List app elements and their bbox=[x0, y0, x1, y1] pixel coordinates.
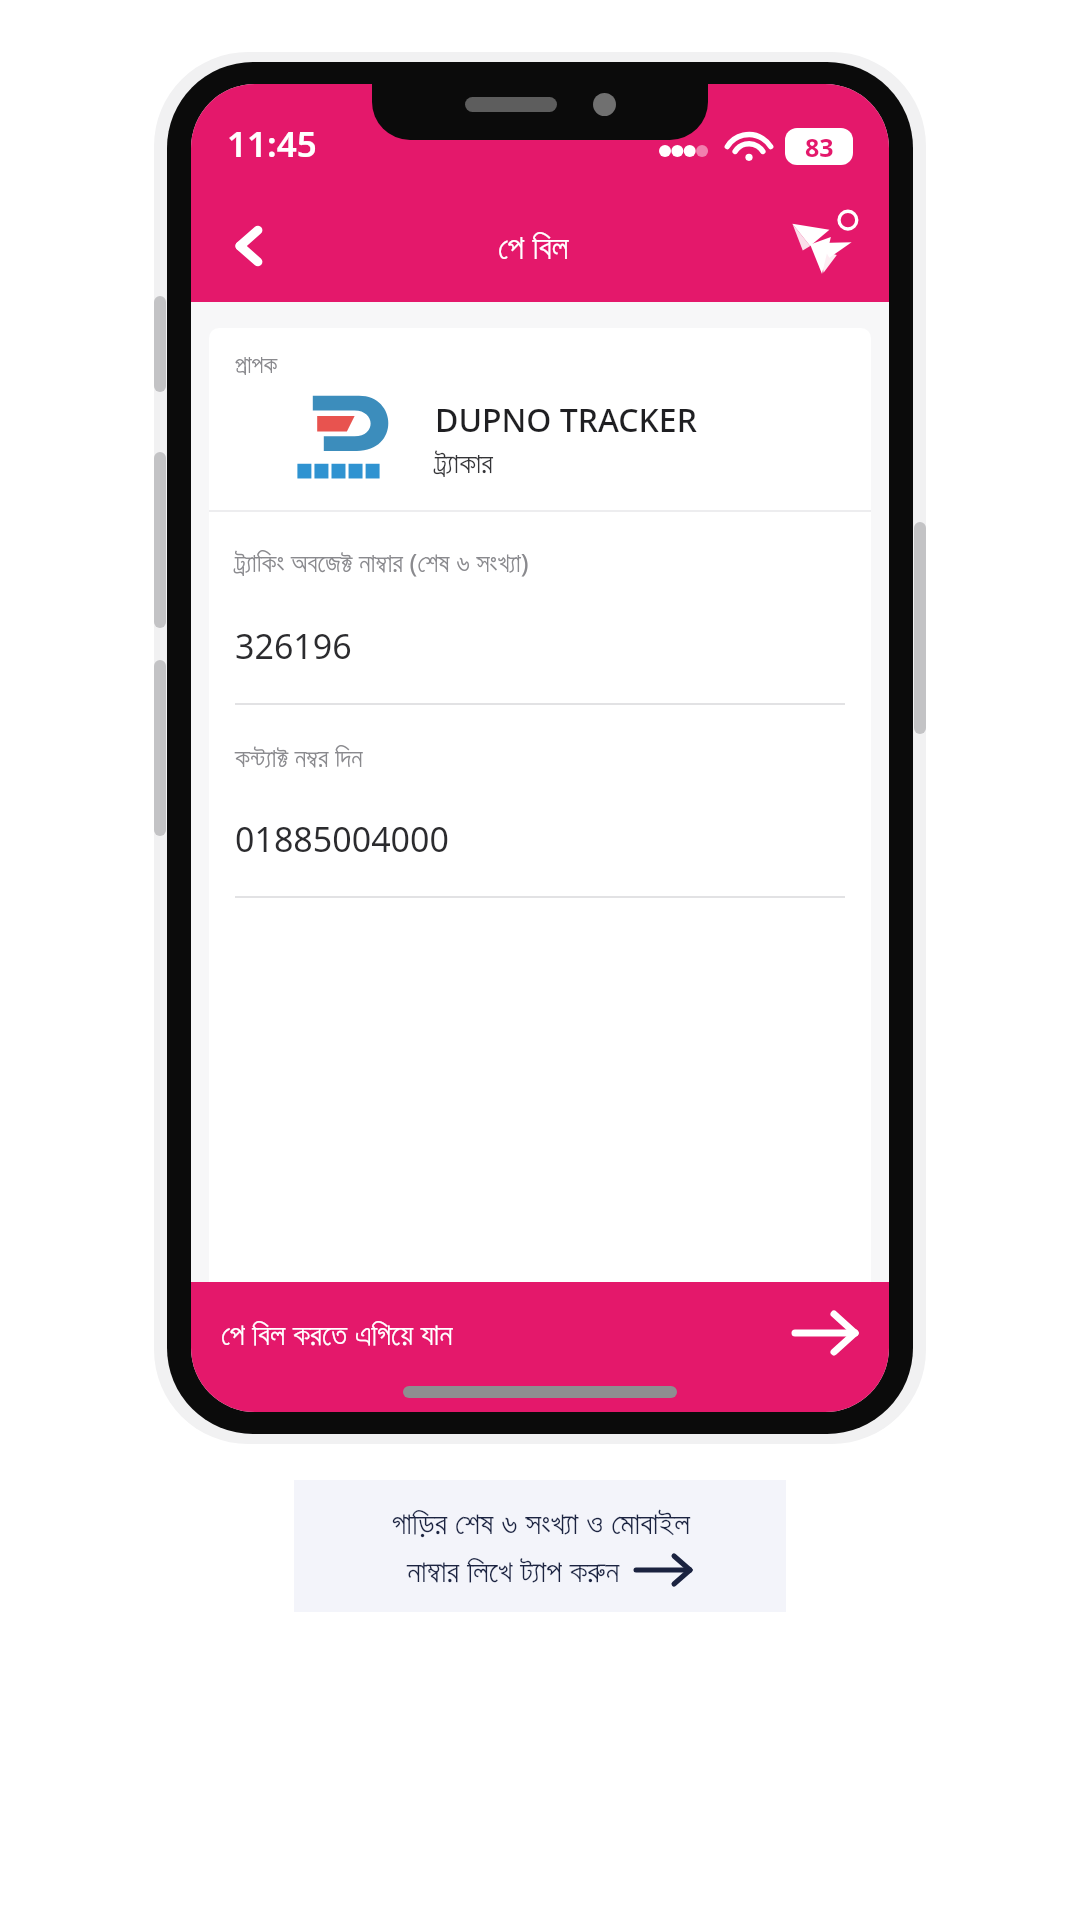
staticText: নাম্বার লিখে ট্যাপ করুন bbox=[407, 1549, 620, 1591]
staticText: 326196 bbox=[235, 623, 352, 669]
staticText: গাড়ির শেষ ৬ সংখ্যা ও মোবাইল bbox=[391, 1501, 690, 1543]
staticText: ট্র্যাকিং অবজেক্ট নাম্বার (শেষ ৬ সংখ্যা) bbox=[235, 544, 529, 579]
button[interactable]: 01885004000 bbox=[235, 816, 845, 862]
staticText: 83 bbox=[805, 130, 834, 164]
button[interactable]: Send money bbox=[775, 199, 869, 293]
button[interactable]: 326196 bbox=[235, 623, 845, 669]
staticText: কন্ট্যাক্ট নম্বর দিন bbox=[235, 739, 363, 774]
staticText: পে বিল bbox=[498, 224, 569, 269]
staticText: পে বিল করতে এগিয়ে যান bbox=[221, 1313, 453, 1354]
staticText: DUPNO TRACKER bbox=[435, 398, 697, 442]
button[interactable]: পে বিল করতে এগিয়ে যান bbox=[191, 1282, 889, 1412]
button[interactable]: Back bbox=[207, 203, 293, 289]
staticText: ট্র্যাকার bbox=[435, 450, 493, 479]
staticText: প্রাপক bbox=[235, 354, 278, 378]
staticText: 11:45 bbox=[227, 120, 317, 168]
staticText: 01885004000 bbox=[235, 816, 449, 862]
